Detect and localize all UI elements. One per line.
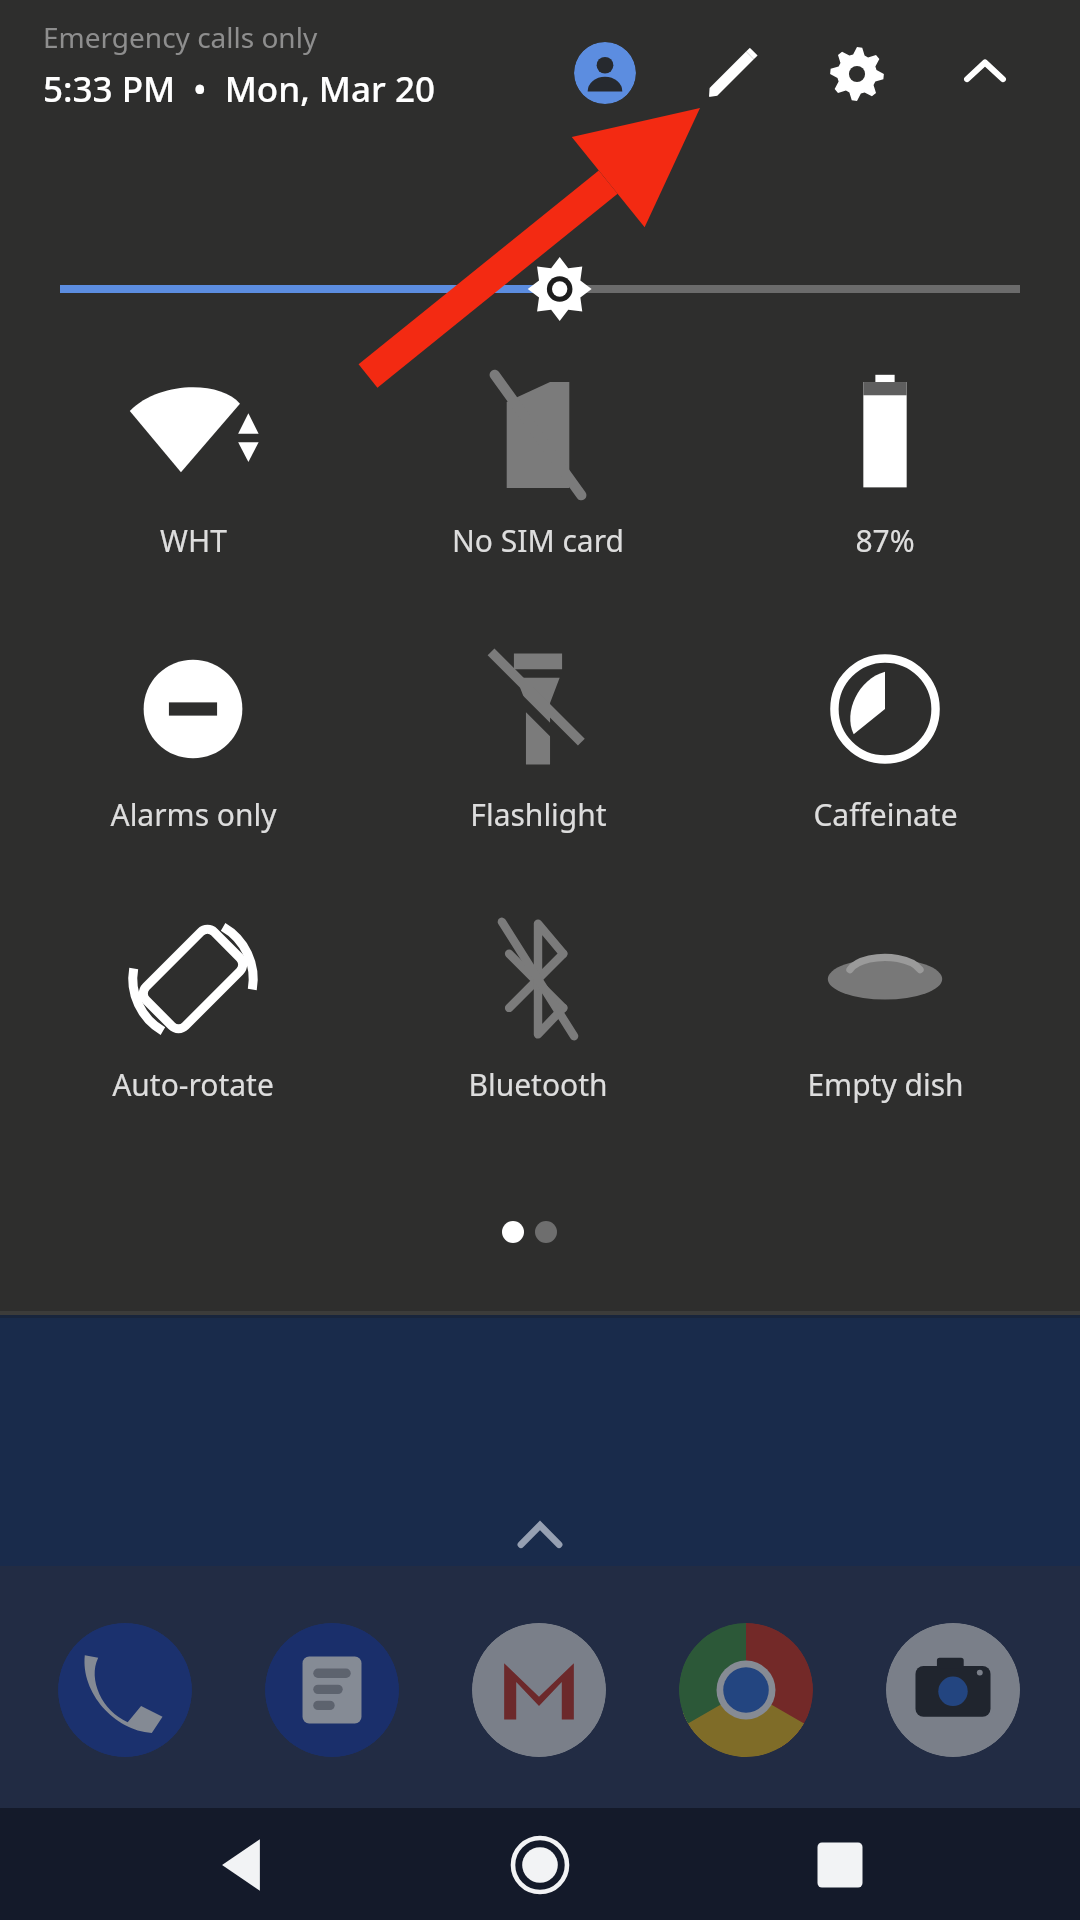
button[interactable]: Collapse quick settings <box>953 42 1017 106</box>
staticText: Caffeinate <box>813 794 958 835</box>
button[interactable]: Caffeinate <box>713 652 1057 852</box>
button[interactable]: Flashlight <box>366 652 710 852</box>
button[interactable]: Home <box>485 1820 595 1910</box>
button[interactable]: Gmail <box>472 1623 606 1757</box>
button[interactable]: No SIM card <box>366 378 710 578</box>
button[interactable]: Recent apps <box>785 1820 895 1910</box>
button[interactable]: Auto-rotate <box>21 922 365 1122</box>
button[interactable]: Chrome <box>679 1623 813 1757</box>
button[interactable]: User account <box>574 42 636 104</box>
button[interactable]: Alarms only <box>21 652 365 852</box>
staticText: Empty dish <box>807 1064 964 1105</box>
staticText: Flashlight <box>470 794 607 835</box>
staticText: No SIM card <box>452 520 624 561</box>
button[interactable]: Edit tiles <box>700 42 764 106</box>
staticText: WHT <box>160 520 227 561</box>
button[interactable]: Back <box>190 1820 300 1910</box>
button[interactable]: Open app drawer <box>506 1505 574 1565</box>
staticText: Alarms only <box>110 794 277 835</box>
staticText: Auto-rotate <box>112 1064 274 1105</box>
button[interactable]: WHT <box>21 378 365 578</box>
button[interactable]: Camera <box>886 1623 1020 1757</box>
button[interactable]: 87% <box>713 378 1057 578</box>
button[interactable]: Phone <box>58 1623 192 1757</box>
button[interactable]: Empty dish <box>713 922 1057 1122</box>
staticText: 87% <box>855 520 915 561</box>
button[interactable]: Brightness <box>60 255 1020 323</box>
staticText: Bluetooth <box>468 1064 608 1105</box>
button[interactable]: Settings <box>825 42 889 106</box>
button[interactable]: Bluetooth <box>366 922 710 1122</box>
staticText: Emergency calls only <box>43 18 318 56</box>
staticText: 5:33 PM • Mon, Mar 20 <box>43 65 435 113</box>
button[interactable]: Messages <box>265 1623 399 1757</box>
